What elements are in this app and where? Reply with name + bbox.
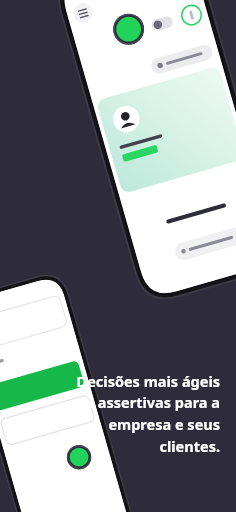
staticText: Decisões mais ágeis e assertivas para a … [56,371,220,456]
button[interactable]: Decisões mais ágeis e assertivas para a … [56,371,220,456]
button[interactable]: Marcador verde [67,446,91,470]
button[interactable]: Destaque verde [114,15,144,45]
